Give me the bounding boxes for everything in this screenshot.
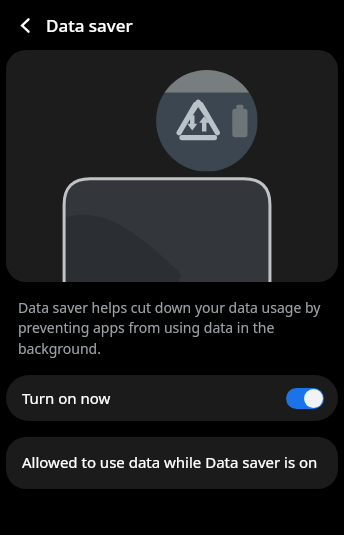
staticText: Data saver helps cut down your data usag…: [18, 298, 326, 359]
button[interactable]: Allowed to use data while Data saver is …: [6, 437, 338, 489]
button[interactable]: Back: [8, 8, 42, 42]
staticText: Allowed to use data while Data saver is …: [22, 452, 318, 472]
staticText: Data saver: [46, 14, 133, 37]
staticText: Turn on now: [22, 388, 286, 408]
button[interactable]: Turn on now: [6, 375, 338, 421]
